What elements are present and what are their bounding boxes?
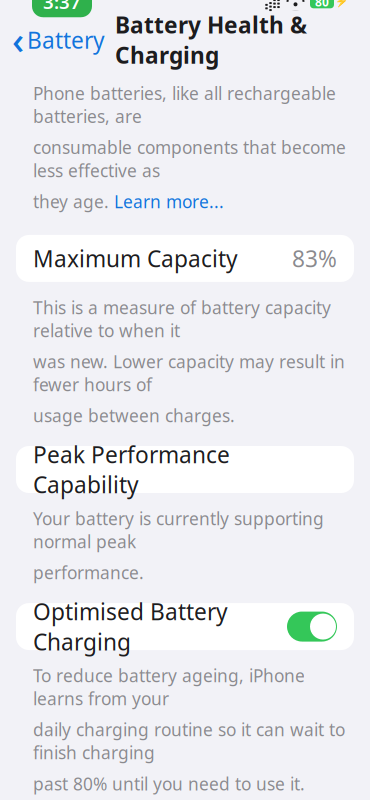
staticText: ‹ [12, 15, 24, 65]
staticText: ⚡ [335, 0, 348, 8]
staticText: 83% [292, 243, 337, 273]
staticText: performance. [33, 561, 144, 584]
staticText: Battery Health & Charging [115, 10, 307, 70]
staticText: Peak Performance Capability [33, 439, 230, 500]
staticText: Learn more... [114, 190, 224, 213]
staticText: Phone batteries, like all rechargeable b… [33, 82, 336, 128]
staticText: past 80% until you need to use it. [33, 772, 305, 795]
staticText: usage between charges. [33, 404, 235, 427]
button[interactable]: Maximum Capacity [16, 235, 354, 282]
staticText: To reduce battery ageing, iPhone learns … [33, 664, 305, 710]
button[interactable]: Learn more... [114, 190, 224, 213]
staticText: Optimised Battery Charging [33, 596, 228, 657]
staticText: they age. [33, 190, 114, 213]
button[interactable]: Optimised Battery Charging [16, 603, 354, 650]
staticText: 3:37 [43, 0, 81, 14]
staticText: This is a measure of battery capacity re… [33, 296, 331, 342]
staticText: daily charging routine so it can wait to… [33, 718, 345, 764]
button[interactable]: ‹ [0, 11, 105, 69]
staticText: Battery [27, 25, 105, 55]
staticText: was new. Lower capacity may result in fe… [33, 350, 345, 396]
staticText: Your battery is currently supporting nor… [33, 507, 324, 553]
staticText: Maximum Capacity [33, 243, 238, 273]
staticText: 80 [315, 0, 329, 10]
staticText: consumable components that become less e… [33, 136, 346, 182]
button[interactable]: Peak Performance Capability [16, 446, 354, 493]
